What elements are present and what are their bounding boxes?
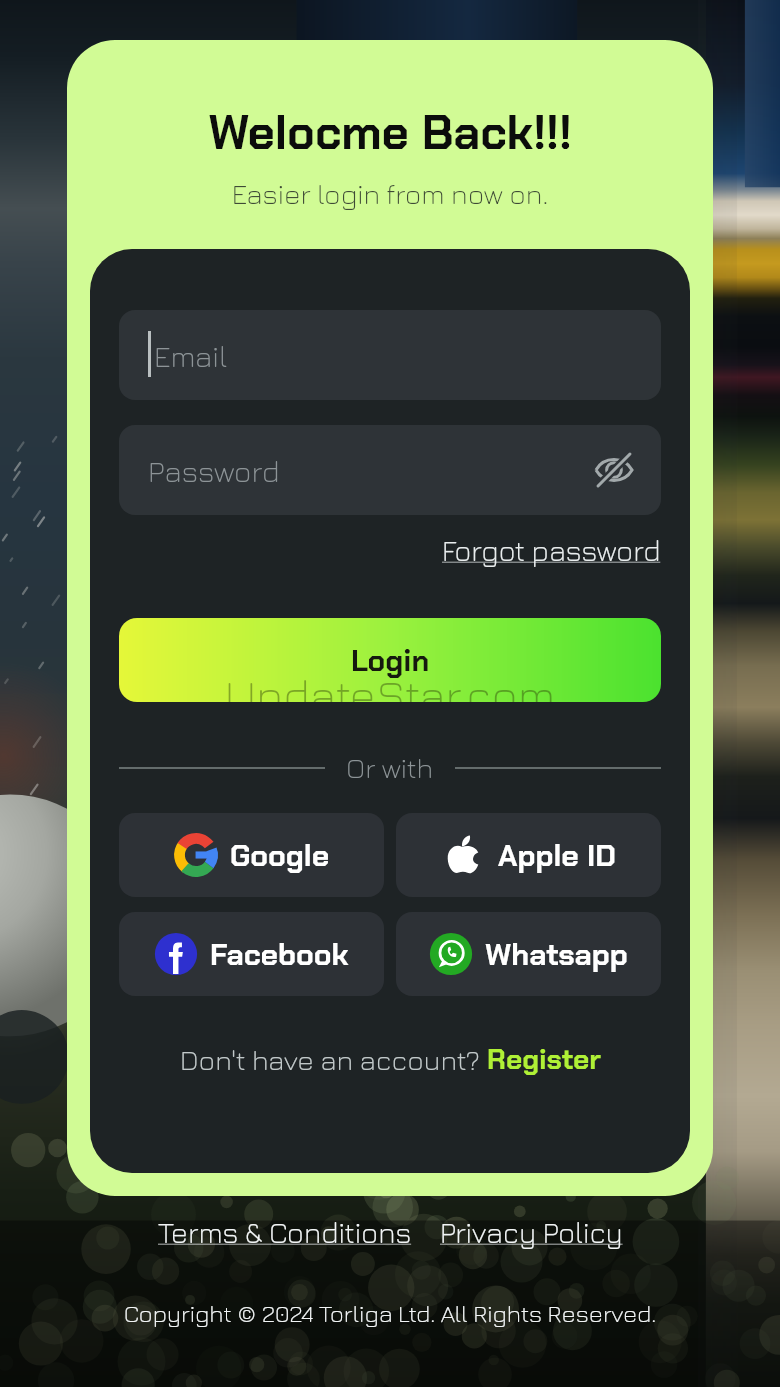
button[interactable]: Facebook (119, 912, 384, 996)
button[interactable]: Email (119, 310, 661, 400)
staticText: Whatsapp (485, 935, 628, 974)
staticText: Easier login from now on. (67, 177, 713, 210)
button[interactable]: Whatsapp (396, 912, 661, 996)
button[interactable]: Password (119, 425, 661, 515)
button[interactable]: Register (487, 1041, 601, 1077)
staticText: Welocme Back!!! (67, 102, 713, 163)
staticText: Or with (346, 751, 434, 784)
staticText: Email (154, 338, 228, 373)
button[interactable]: Google (119, 813, 384, 897)
staticText: Copyright © 2024 Torliga Ltd. All Rights… (0, 1299, 780, 1327)
button[interactable]: UpdateStar.com (119, 618, 661, 702)
staticText: Login (351, 641, 430, 680)
button[interactable]: Apple ID (396, 813, 661, 897)
staticText: Facebook (210, 935, 349, 974)
button[interactable]: Terms & Conditions (158, 1215, 412, 1249)
staticText: Password (148, 453, 280, 488)
button[interactable]: Privacy Policy (440, 1215, 623, 1249)
staticText: Apple ID (498, 836, 616, 875)
staticText: Don't have an account? (180, 1043, 487, 1076)
button[interactable]: Show password (593, 449, 635, 491)
staticText: Google (230, 836, 330, 875)
button[interactable]: Forgot password (442, 533, 661, 567)
staticText: UpdateStar.com (119, 668, 661, 702)
